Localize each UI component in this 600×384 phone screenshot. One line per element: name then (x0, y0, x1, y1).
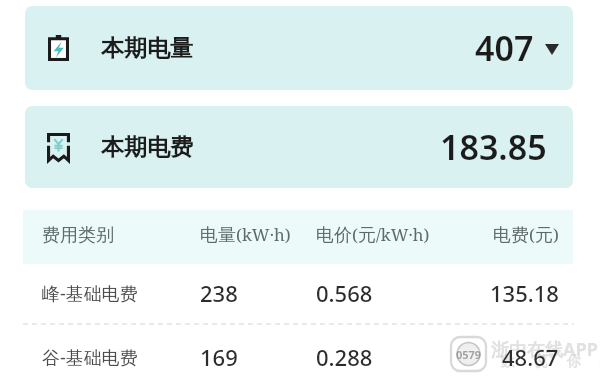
staticText: 238 (200, 278, 238, 308)
staticText: 48.67 (502, 342, 559, 372)
staticText: 169 (200, 342, 238, 372)
button[interactable]: 峰-基础电费 (23, 267, 573, 319)
staticText: 0.288 (316, 342, 373, 372)
staticText: 数说你身边 (491, 353, 600, 371)
button[interactable]: 展开本期电量明细 (545, 43, 559, 54)
staticText: 407 (475, 25, 534, 71)
staticText: 本期电量 (101, 34, 193, 63)
staticText: 0.568 (316, 278, 373, 308)
staticText: 费用类别 (42, 224, 114, 247)
staticText: 电价(元/kW·h) (316, 223, 430, 247)
button[interactable]: 本期电量 (25, 6, 573, 90)
staticText: 本期电费 (101, 133, 193, 162)
staticText: 0579 (453, 347, 484, 362)
button[interactable]: 谷-基础电费 (23, 331, 573, 383)
staticText: 电量(kW·h) (200, 223, 291, 247)
staticText: 电费(元) (493, 223, 559, 247)
staticText: 峰-基础电费 (42, 281, 138, 306)
staticText: 谷-基础电费 (42, 345, 138, 370)
staticText: 135.18 (490, 278, 559, 308)
staticText: 183.85 (440, 124, 547, 170)
staticText: 浙中在线APP (491, 337, 598, 362)
button[interactable]: 本期电费 (25, 106, 573, 188)
